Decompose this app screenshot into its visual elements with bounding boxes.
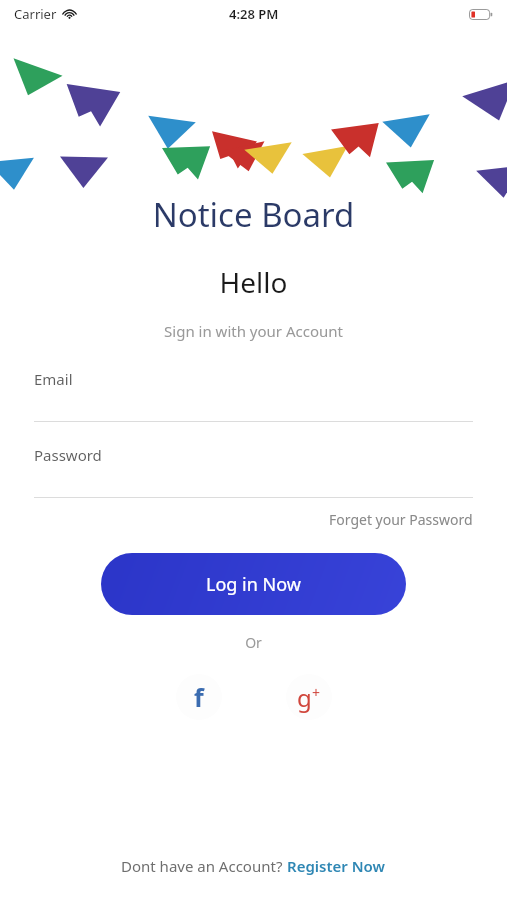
staticText: Sign in with your Account — [0, 321, 507, 341]
button[interactable]: Sign in with Google Plus — [286, 674, 332, 720]
staticText: Or — [0, 633, 507, 652]
button[interactable]: Log in Now — [101, 553, 406, 615]
staticText: 4:28 PM — [229, 5, 279, 23]
staticText: Log in Now — [206, 572, 301, 597]
button[interactable]: Password — [34, 445, 473, 498]
staticText: Notice Board — [0, 192, 507, 237]
staticText: f — [194, 680, 204, 714]
button[interactable]: Email — [34, 369, 473, 422]
staticText: Password — [34, 445, 102, 465]
button[interactable]: Dont have an Account? — [0, 856, 507, 900]
staticText: Dont have an Account? — [121, 856, 287, 876]
staticText: + — [312, 683, 321, 702]
staticText: Hello — [0, 263, 507, 301]
button[interactable]: Forget your Password — [329, 508, 473, 531]
button[interactable]: Sign in with Facebook — [176, 674, 222, 720]
staticText: g — [297, 681, 312, 714]
staticText: Email — [34, 369, 73, 389]
staticText: Carrier — [14, 5, 57, 23]
staticText: Register Now — [287, 856, 386, 876]
